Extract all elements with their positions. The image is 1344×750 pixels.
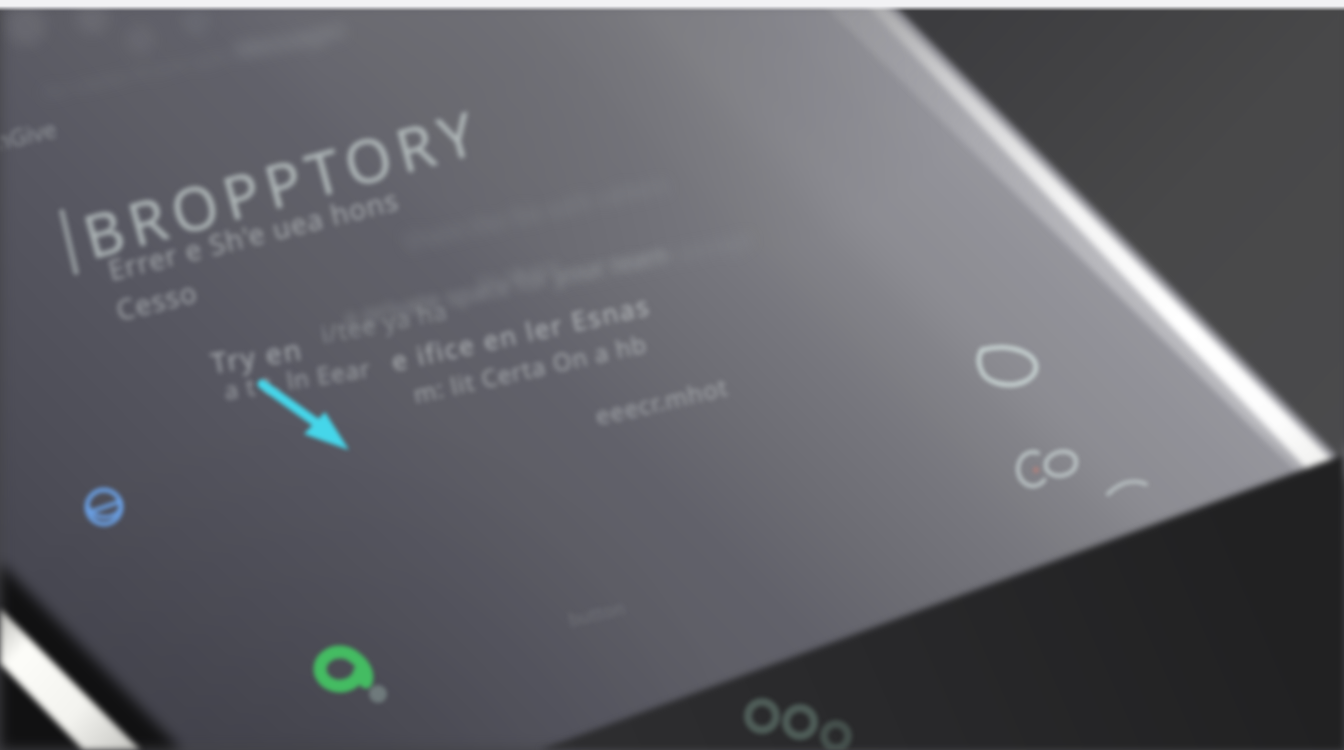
staticText: a t t. ln Eear: [222, 351, 373, 406]
staticText: in the cloud storage: [548, 221, 756, 295]
staticText: Errer e Sh'e uea hons: [104, 180, 402, 289]
staticText: Cesso: [112, 272, 202, 329]
staticText: Messages: [232, 11, 348, 66]
staticText: thGive: [0, 112, 59, 158]
staticText: Try en: [208, 329, 306, 382]
staticText: m: lit Certa On a hb: [410, 326, 650, 410]
staticText: Share the file with others: [400, 167, 671, 256]
staticText: BROPPTORY: [74, 89, 491, 277]
staticText: to share: [474, 248, 563, 295]
staticText: button: [566, 595, 628, 632]
button[interactable]: Phone screen: [0, 0, 1344, 750]
staticText: eeecr.mhot: [592, 369, 732, 432]
staticText: i/tee ya ha: [318, 293, 451, 350]
staticText: a private space for your team: [340, 236, 671, 334]
staticText: e ifice en ler Esnas: [388, 287, 654, 378]
